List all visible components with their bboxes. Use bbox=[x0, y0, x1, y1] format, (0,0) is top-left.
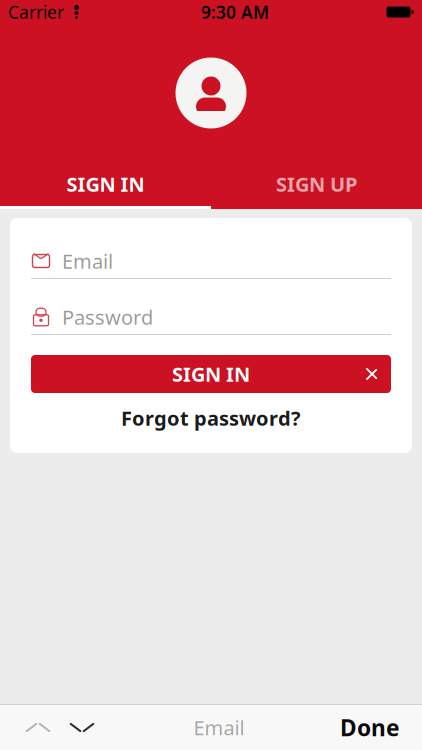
staticText: Password bbox=[62, 304, 153, 330]
button[interactable]: SIGN IN bbox=[31, 355, 391, 393]
staticText: SIGN IN bbox=[66, 171, 144, 197]
button[interactable]: SIGN UP bbox=[211, 162, 422, 206]
button[interactable]: Next field bbox=[60, 705, 104, 749]
staticText: 9:30 AM bbox=[201, 0, 269, 23]
button[interactable]: Previous field bbox=[16, 705, 60, 749]
button[interactable]: SIGN IN bbox=[0, 162, 211, 206]
staticText: Email bbox=[62, 248, 113, 274]
staticText: SIGN IN bbox=[172, 361, 250, 387]
staticText: Email bbox=[193, 714, 244, 741]
button[interactable]: Forgot password? bbox=[31, 401, 391, 435]
staticText: Forgot password? bbox=[121, 405, 301, 431]
staticText: Carrier bbox=[8, 0, 64, 23]
staticText: SIGN UP bbox=[276, 171, 357, 197]
staticText: Done bbox=[340, 712, 400, 742]
button[interactable]: Done bbox=[334, 705, 406, 749]
